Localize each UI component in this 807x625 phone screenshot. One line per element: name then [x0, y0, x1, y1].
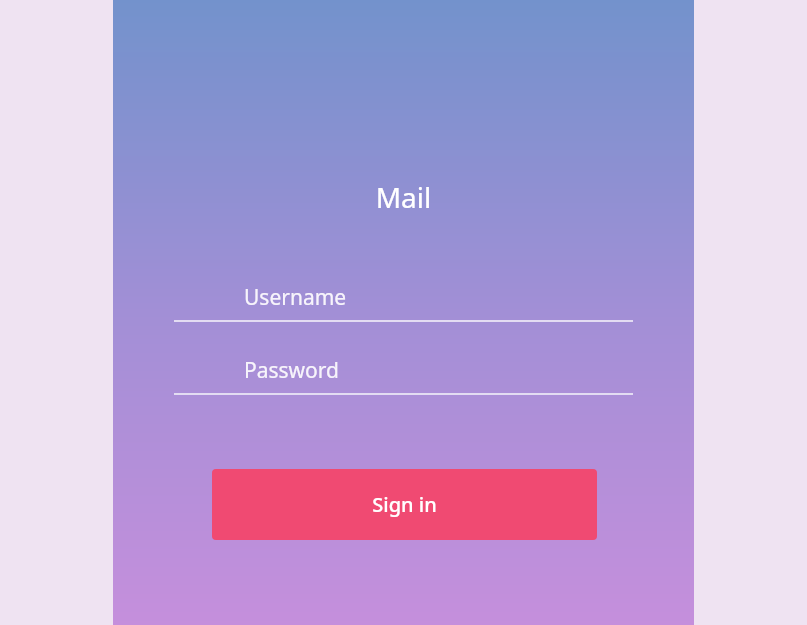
staticText: Username	[244, 283, 347, 312]
staticText: Mail	[113, 178, 694, 216]
button[interactable]: Username	[174, 278, 633, 322]
staticText: Sign in	[372, 491, 437, 518]
button[interactable]: Sign in	[212, 469, 597, 540]
button[interactable]: Password	[174, 351, 633, 395]
staticText: Password	[244, 356, 339, 385]
